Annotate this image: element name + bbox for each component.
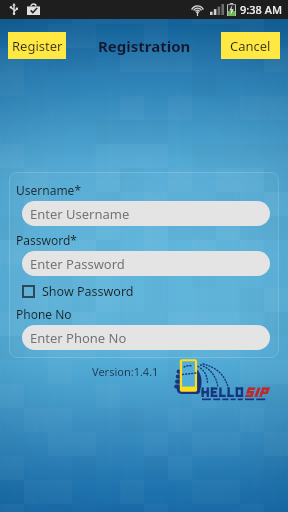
staticText: Username* bbox=[16, 182, 81, 198]
button[interactable]: Enter Password bbox=[22, 251, 270, 276]
staticText: Password* bbox=[16, 232, 77, 248]
staticText: Enter Username bbox=[30, 205, 130, 223]
button[interactable]: Register bbox=[8, 32, 66, 59]
staticText: Show Password bbox=[42, 283, 134, 300]
staticText: Enter Password bbox=[30, 255, 125, 273]
staticText: Cancel bbox=[230, 37, 271, 55]
button[interactable]: Show Password bbox=[16, 283, 134, 300]
other: HelloSIP logo bbox=[174, 356, 286, 404]
button[interactable]: Enter Username bbox=[22, 201, 270, 226]
staticText: Registration bbox=[98, 36, 191, 56]
staticText: 9:38 AM bbox=[240, 2, 283, 17]
staticText: Enter Phone No bbox=[30, 329, 127, 347]
button[interactable]: Cancel bbox=[221, 32, 280, 59]
button[interactable]: Enter Phone No bbox=[22, 325, 270, 350]
staticText: Register bbox=[12, 37, 63, 55]
staticText: Version:1.4.1 bbox=[92, 364, 159, 379]
staticText: Phone No bbox=[16, 306, 72, 322]
